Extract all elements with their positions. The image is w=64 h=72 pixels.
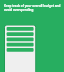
staticText: Keep track of your overall budget and av… [4,4,61,12]
button[interactable] [7,39,58,43]
button[interactable] [7,33,58,37]
button[interactable] [7,51,58,55]
button[interactable] [7,27,58,31]
button[interactable] [7,45,58,49]
